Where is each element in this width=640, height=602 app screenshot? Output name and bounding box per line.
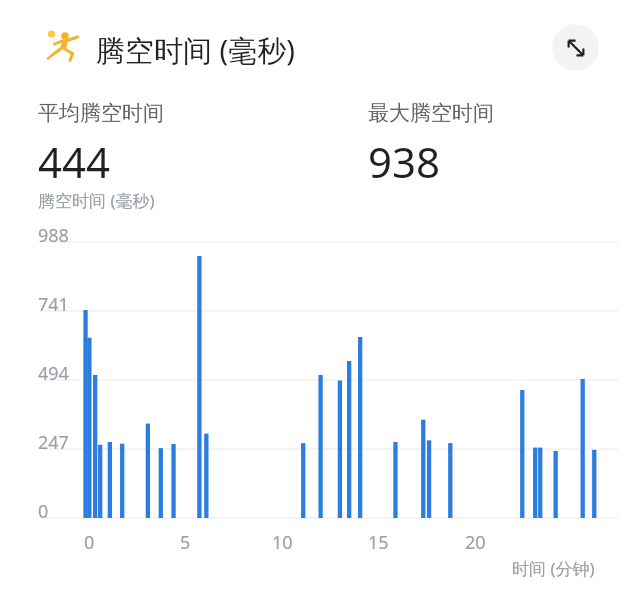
staticText: 10 xyxy=(272,530,293,555)
staticText: 时间 (分钟) xyxy=(512,557,595,580)
staticText: 20 xyxy=(465,530,486,555)
staticText: 腾空时间 (毫秒) xyxy=(38,189,155,212)
staticText: 5 xyxy=(180,530,191,555)
staticText: 247 xyxy=(38,430,69,455)
button[interactable]: Expand chart xyxy=(552,24,599,71)
staticText: 741 xyxy=(38,292,69,317)
staticText: 腾空时间 (毫秒) xyxy=(96,30,295,70)
staticText: 最大腾空时间 xyxy=(368,100,494,126)
staticText: 988 xyxy=(38,223,69,248)
staticText: 0 xyxy=(38,499,49,524)
staticText: 0 xyxy=(84,530,95,555)
staticText: 444 xyxy=(38,133,111,190)
staticText: 494 xyxy=(38,361,69,386)
staticText: 938 xyxy=(368,133,441,190)
staticText: 平均腾空时间 xyxy=(38,100,164,126)
staticText: 15 xyxy=(368,530,389,555)
